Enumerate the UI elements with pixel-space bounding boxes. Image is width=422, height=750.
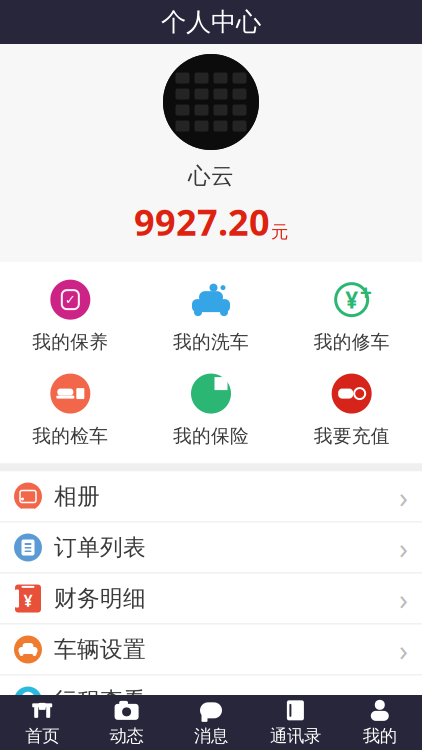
staticText: › (399, 681, 408, 720)
staticText: ¥ (345, 285, 358, 315)
button[interactable]: 通讯录 (253, 695, 338, 750)
staticText: 消息 (194, 725, 228, 747)
staticText: 我的 (363, 725, 397, 747)
staticText: + (360, 277, 372, 306)
staticText: 车辆设置 (54, 636, 146, 663)
staticText: 我的保养 (32, 331, 108, 353)
button[interactable]: 我的洗车 (141, 276, 281, 355)
staticText: 相册 (54, 483, 100, 510)
staticText: 财务明细 (54, 585, 146, 612)
staticText: 行程查看 (54, 687, 146, 714)
staticText: › (399, 477, 408, 516)
button[interactable]: 行程查看 (0, 675, 422, 725)
button[interactable]: 订单列表 (0, 522, 422, 572)
button[interactable]: 动态 (84, 695, 169, 750)
staticText: 我的洗车 (173, 331, 249, 353)
staticText: 油耗查看 (54, 738, 146, 750)
staticText: 我要充值 (314, 425, 390, 447)
button[interactable]: 首页 (0, 695, 84, 750)
button[interactable]: 相册 (0, 471, 422, 521)
button[interactable]: 油耗查看 (0, 726, 422, 750)
staticText: › (399, 579, 408, 618)
staticText: ✓ (65, 292, 76, 307)
button[interactable]: 我的 (338, 695, 422, 750)
staticText: 元 (271, 221, 288, 243)
button[interactable]: 车辆设置 (0, 624, 422, 674)
staticText: › (399, 630, 408, 669)
staticText: 个人中心 (161, 6, 261, 37)
staticText: 通讯录 (270, 725, 321, 747)
button[interactable]: 我的检车 (0, 370, 141, 449)
button[interactable]: 消息 (169, 695, 253, 750)
staticText: ¥ (23, 590, 32, 611)
staticText: 9927.20 (134, 198, 270, 246)
staticText: 动态 (110, 725, 144, 747)
staticText: 订单列表 (54, 534, 146, 561)
staticText: 心云 (188, 162, 234, 190)
staticText: 我的修车 (314, 331, 390, 353)
button[interactable]: 我的保险 (141, 370, 281, 449)
button[interactable]: ✓ (0, 276, 141, 355)
button[interactable]: 我要充值 (281, 370, 422, 449)
button[interactable]: ¥ (281, 276, 422, 355)
button[interactable]: ¥ (0, 573, 422, 623)
staticText: › (399, 528, 408, 567)
staticText: 我的保险 (173, 425, 249, 447)
staticText: 我的检车 (32, 425, 108, 447)
staticText: 首页 (25, 725, 59, 747)
